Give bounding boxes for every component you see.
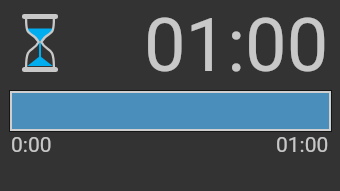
staticText: 01:00 <box>276 133 329 158</box>
staticText: 01:00 <box>144 2 329 89</box>
button[interactable]: Timer <box>22 14 58 72</box>
staticText: 0:00 <box>11 133 52 158</box>
